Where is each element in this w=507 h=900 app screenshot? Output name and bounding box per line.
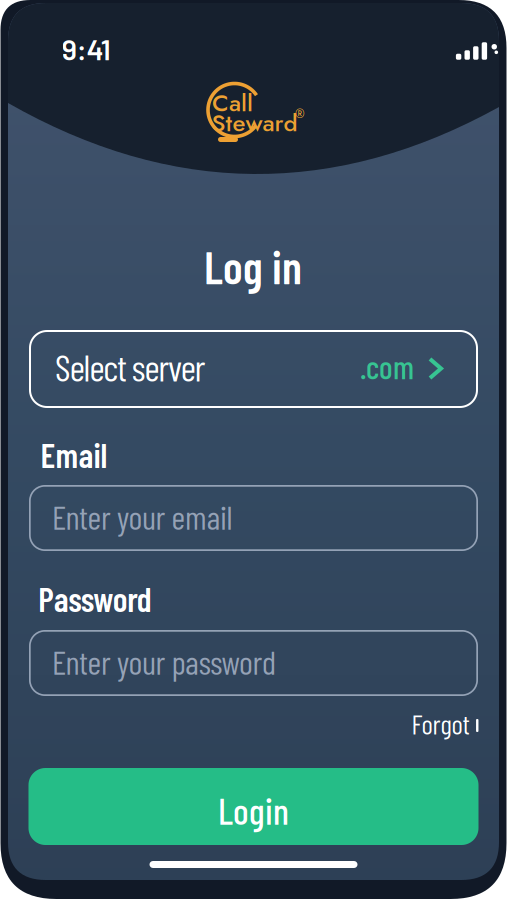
- staticText: Password: [38, 578, 152, 619]
- staticText: Email: [40, 434, 107, 475]
- staticText: Log in: [204, 239, 302, 293]
- button[interactable]: Select server: [29, 330, 478, 408]
- button[interactable]: Forgot: [412, 707, 478, 740]
- button[interactable]: Login: [28, 768, 478, 845]
- staticText: ®: [295, 105, 305, 123]
- staticText: .com: [360, 347, 414, 386]
- staticText: Select server: [55, 344, 206, 389]
- button[interactable]: Enter your email: [29, 485, 478, 551]
- staticText: Enter your password: [52, 641, 276, 681]
- staticText: Forgot: [412, 707, 470, 740]
- staticText: Enter your email: [52, 496, 232, 536]
- staticText: Steward: [211, 106, 297, 140]
- staticText: Call: [212, 86, 253, 120]
- staticText: 9:41: [61, 31, 110, 66]
- staticText: Login: [218, 788, 289, 832]
- button[interactable]: Enter your password: [29, 630, 478, 696]
